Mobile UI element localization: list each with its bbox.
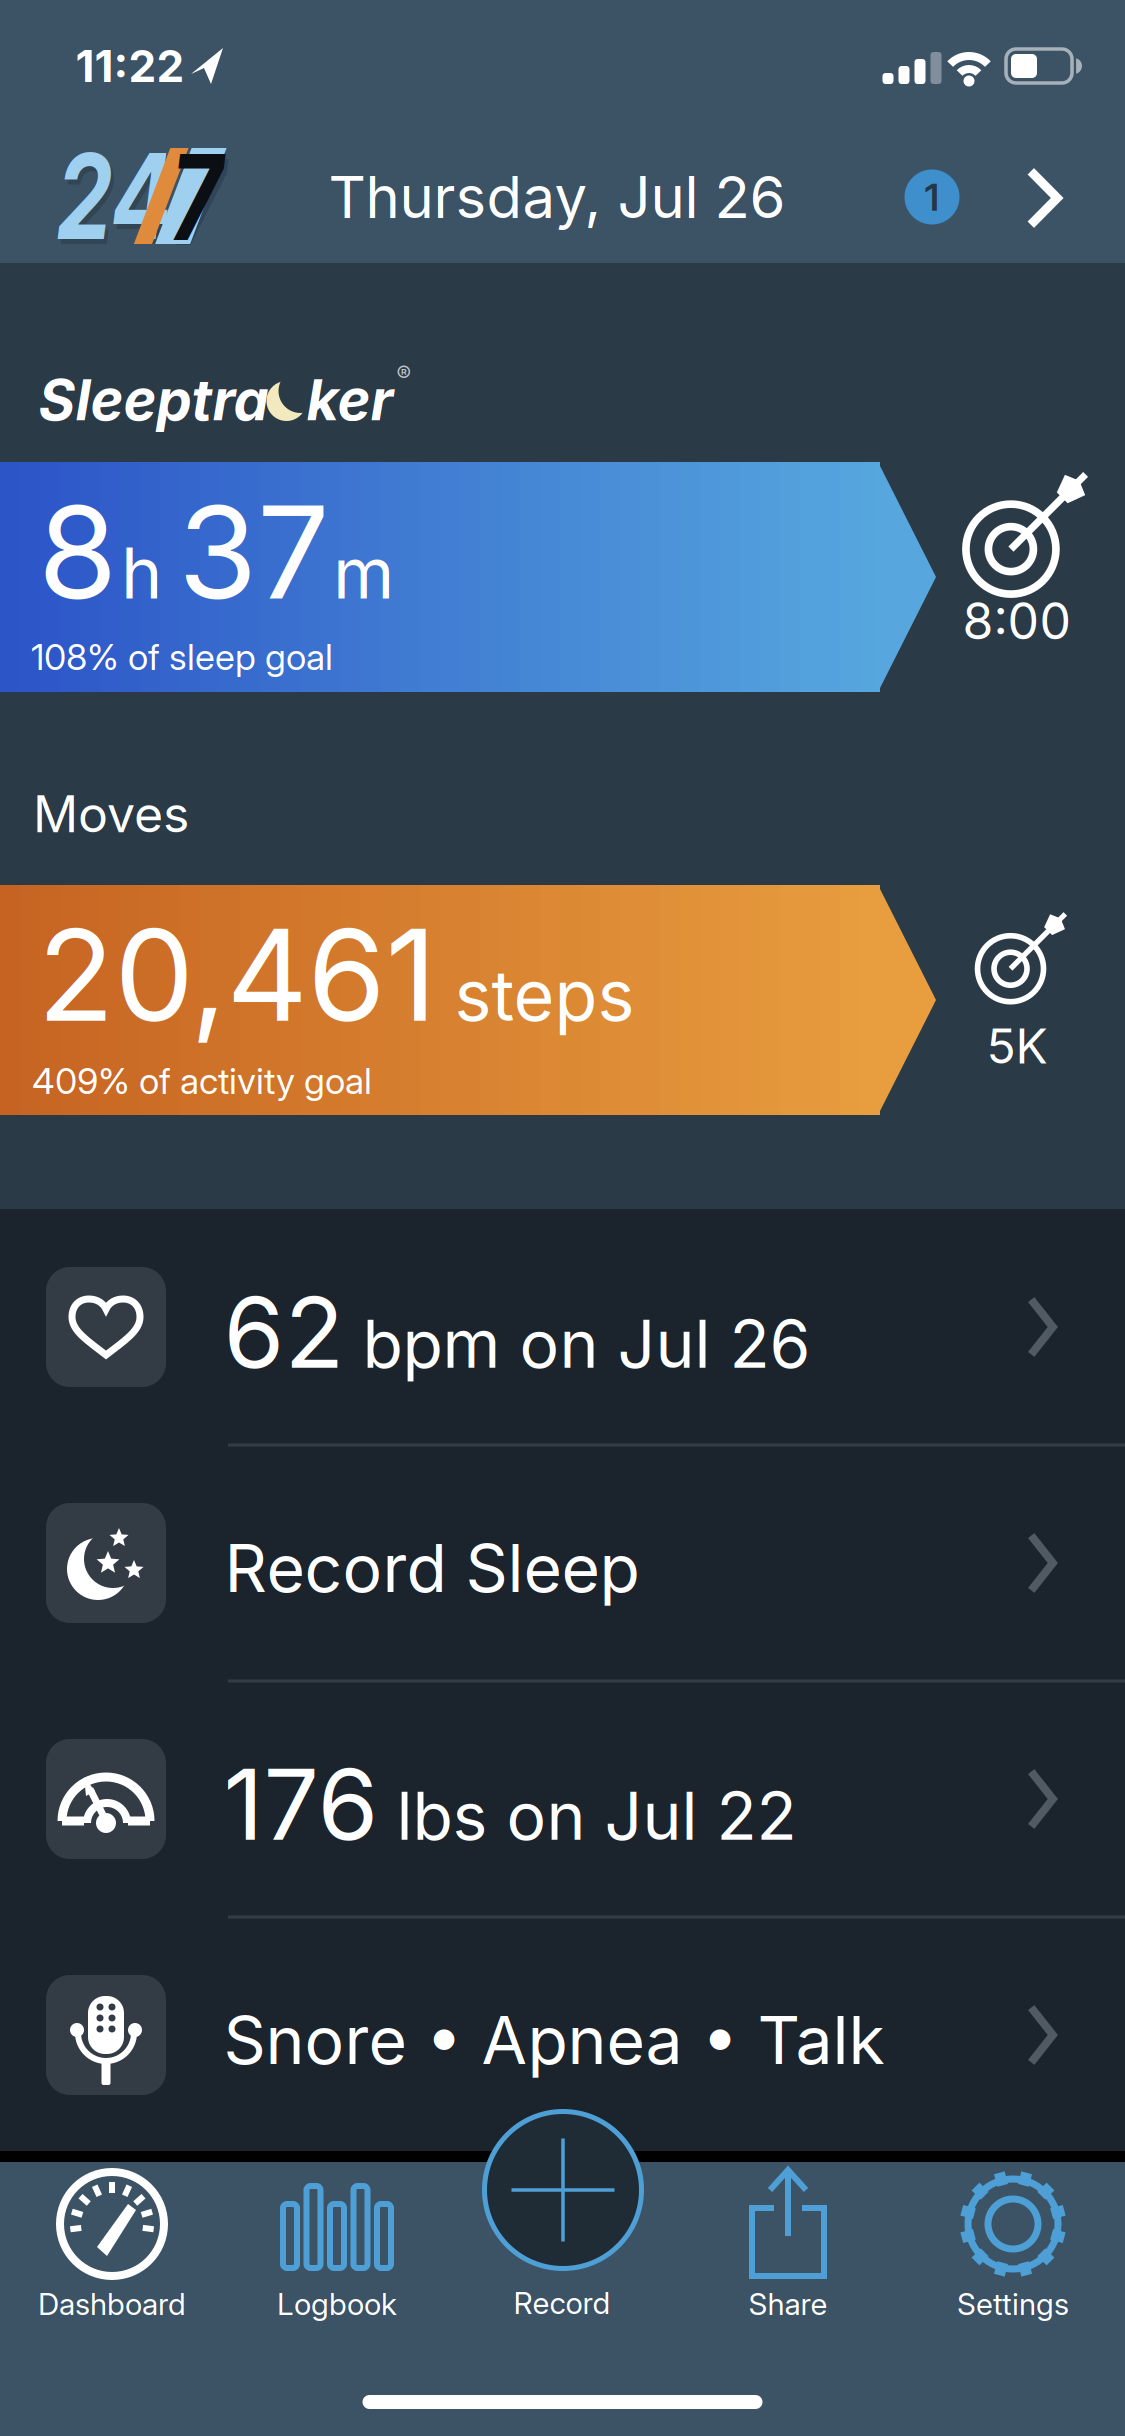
button[interactable]: 1 notification xyxy=(904,169,959,224)
staticText: Record Sleep xyxy=(224,1528,639,1608)
staticText: bpm on Jul 26 xyxy=(362,1304,810,1384)
button[interactable]: 62 bpm on Jul 26 xyxy=(0,1209,1125,1445)
staticText: Thursday, Jul 26 xyxy=(328,162,785,232)
staticText: 8 xyxy=(38,475,117,629)
button[interactable]: Record Sleep xyxy=(0,1445,1125,1681)
staticText: 62 xyxy=(223,1273,344,1391)
staticText: Dashboard xyxy=(38,2286,186,2322)
button[interactable]: 24/7 home xyxy=(26,146,266,246)
staticText: 7 xyxy=(181,131,250,273)
staticText: 37 xyxy=(178,475,329,629)
staticText: m xyxy=(333,531,394,615)
staticText: 108% of sleep goal xyxy=(31,635,333,679)
staticText: 24 xyxy=(32,130,184,272)
staticText: 8:00 xyxy=(962,591,1071,651)
staticText: Settings xyxy=(957,2286,1069,2322)
staticText: 7 xyxy=(177,126,246,268)
button[interactable]: Next day xyxy=(1022,165,1066,231)
staticText: 176 xyxy=(223,1745,378,1863)
staticText: Sleeptra xyxy=(38,366,268,434)
button[interactable]: Snore • Apnea • Talk xyxy=(0,1917,1125,2153)
button[interactable]: Share xyxy=(683,2162,893,2332)
staticText: steps xyxy=(454,953,634,1038)
staticText: ® xyxy=(396,361,411,387)
staticText: 1 xyxy=(924,174,939,220)
staticText: 24 xyxy=(28,125,180,267)
staticText: Snore • Apnea • Talk xyxy=(223,2000,884,2080)
staticText: ker xyxy=(306,366,393,434)
staticText: Logbook xyxy=(277,2286,397,2322)
staticText: 409% of activity goal xyxy=(32,1059,372,1103)
staticText: Record xyxy=(513,2285,610,2321)
button[interactable]: Logbook xyxy=(232,2162,442,2332)
button[interactable]: 176 lbs on Jul 22 xyxy=(0,1681,1125,1917)
staticText: 20,461 xyxy=(37,899,436,1051)
staticText: Moves xyxy=(33,784,189,844)
staticText: 11:22 xyxy=(75,39,184,93)
button[interactable]: Dashboard xyxy=(7,2162,217,2332)
button[interactable]: Settings xyxy=(908,2162,1118,2332)
staticText: 5K xyxy=(986,1017,1047,1075)
button[interactable]: Record xyxy=(484,2111,641,2268)
staticText: h xyxy=(121,531,162,615)
staticText: Share xyxy=(748,2286,827,2322)
staticText: lbs on Jul 22 xyxy=(396,1776,796,1856)
